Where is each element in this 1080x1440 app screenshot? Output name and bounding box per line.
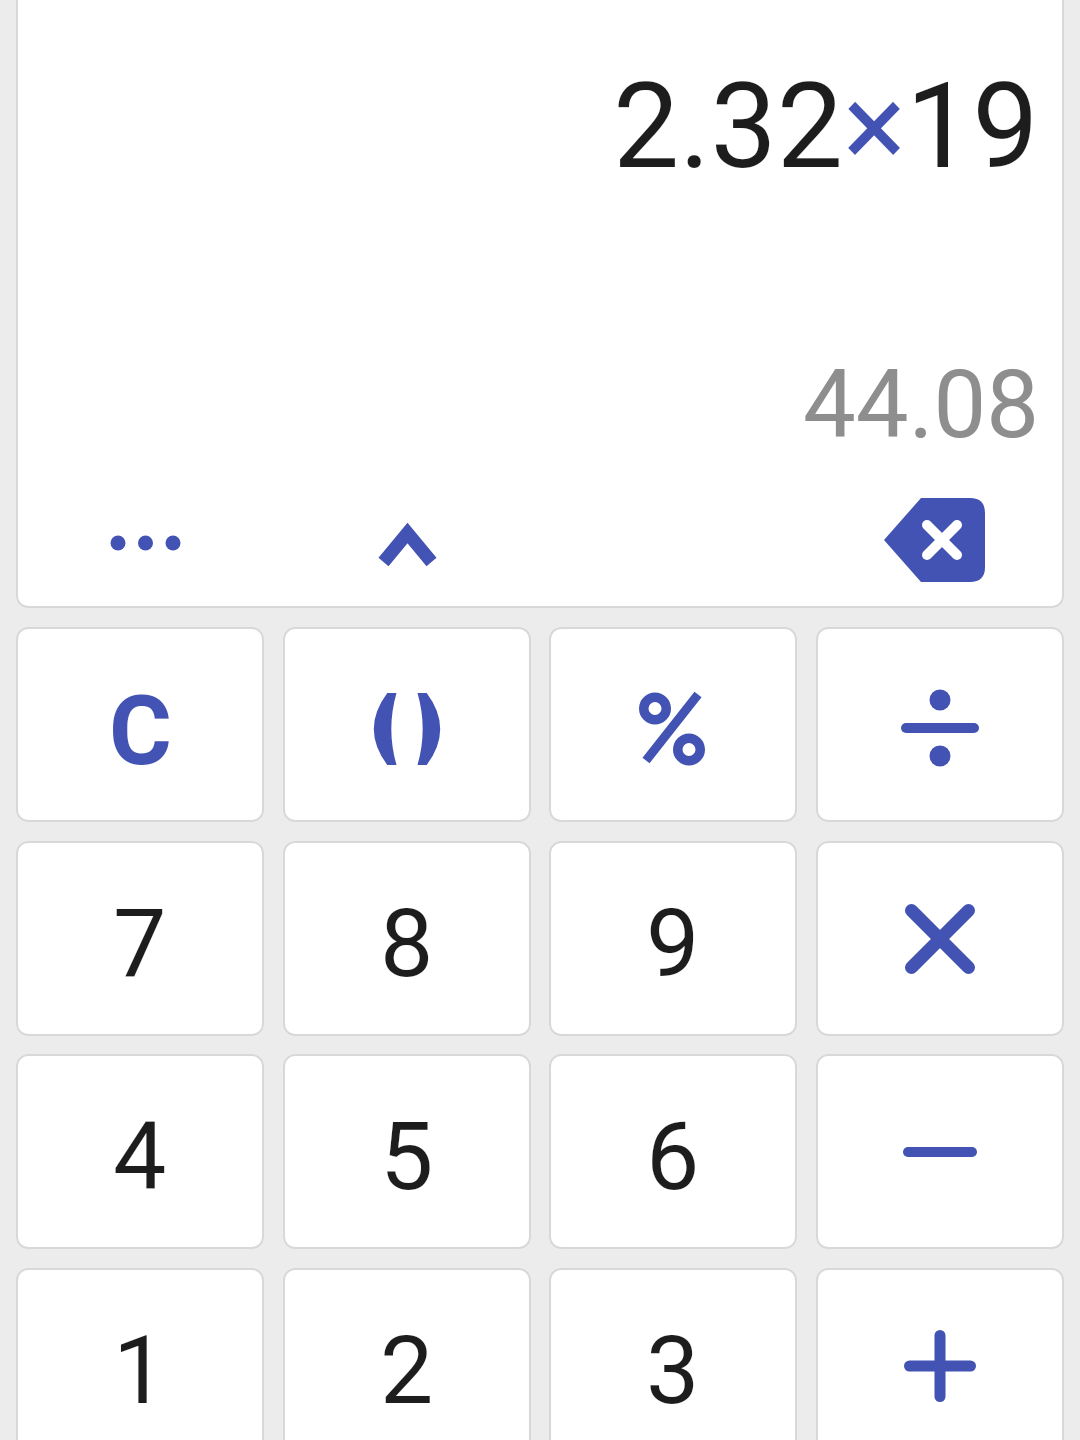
button[interactable]: 3 bbox=[549, 1268, 797, 1440]
button[interactable] bbox=[869, 490, 999, 590]
staticText: 8 bbox=[380, 888, 434, 999]
staticText: 6 bbox=[646, 1101, 700, 1212]
button[interactable] bbox=[816, 841, 1064, 1036]
staticText: 2 bbox=[380, 1315, 434, 1426]
button[interactable]: 7 bbox=[16, 841, 264, 1036]
button[interactable] bbox=[347, 498, 468, 588]
button[interactable] bbox=[549, 627, 797, 822]
button[interactable]: 8 bbox=[283, 841, 531, 1036]
staticText: 7 bbox=[113, 888, 167, 999]
button[interactable] bbox=[816, 1054, 1064, 1249]
button[interactable]: 1 bbox=[16, 1268, 264, 1440]
button[interactable]: 5 bbox=[283, 1054, 531, 1249]
button[interactable] bbox=[816, 627, 1064, 822]
staticText: 5 bbox=[380, 1101, 434, 1212]
staticText: 44.08 bbox=[803, 350, 1040, 460]
staticText: 3 bbox=[646, 1315, 700, 1426]
staticText: C bbox=[109, 675, 172, 788]
button[interactable]: 2 bbox=[283, 1268, 531, 1440]
button[interactable] bbox=[85, 498, 206, 588]
staticText: 4 bbox=[113, 1101, 167, 1212]
button[interactable] bbox=[816, 1268, 1064, 1440]
button[interactable]: 4 bbox=[16, 1054, 264, 1249]
button[interactable]: 9 bbox=[549, 841, 797, 1036]
button[interactable] bbox=[283, 627, 531, 822]
staticText: 1 bbox=[113, 1315, 167, 1426]
staticText: 2.32×19 bbox=[613, 58, 1039, 196]
staticText: 9 bbox=[646, 888, 700, 999]
button[interactable]: 6 bbox=[549, 1054, 797, 1249]
button[interactable]: C bbox=[16, 627, 264, 822]
